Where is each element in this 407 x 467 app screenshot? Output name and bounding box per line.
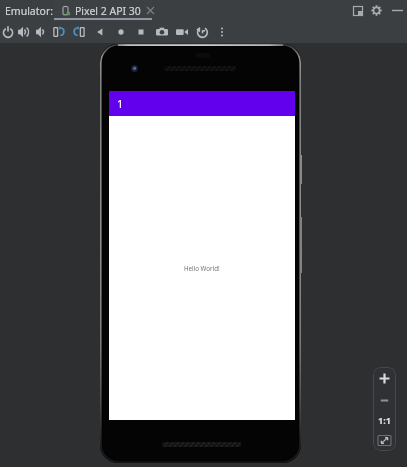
button[interactable]: Take screenshot	[153, 21, 171, 43]
button[interactable]: Rotate right	[70, 21, 88, 43]
button[interactable]: Zoom out	[373, 390, 396, 410]
staticText: Emulator:	[5, 4, 54, 18]
button[interactable]: Fit to screen	[373, 430, 396, 451]
staticText: Pixel 2 API 30	[75, 4, 141, 18]
other: Close tab	[147, 7, 154, 14]
button[interactable]: Home	[112, 21, 130, 43]
staticText: Hello World!	[184, 264, 220, 272]
button[interactable]: Minimize	[389, 0, 406, 21]
button[interactable]: More options	[213, 21, 231, 43]
button[interactable]: Pixel 2 API 30	[61, 0, 154, 21]
button[interactable]: Volume up	[15, 21, 33, 43]
staticText: 1	[117, 96, 124, 111]
button[interactable]: Snapshots	[193, 21, 211, 43]
button[interactable]: Zoom in	[373, 367, 396, 390]
button[interactable]: Rotate left	[50, 21, 68, 43]
button[interactable]: Record screen	[173, 21, 191, 43]
button[interactable]: Volume down	[33, 21, 51, 43]
button[interactable]: 1:1	[373, 410, 396, 430]
staticText: 1:1	[378, 414, 391, 426]
button[interactable]: Split window	[349, 0, 366, 21]
button[interactable]	[54, 0, 152, 21]
button[interactable]: Back	[91, 21, 109, 43]
button[interactable]: Settings	[368, 0, 385, 21]
button[interactable]: Overview	[132, 21, 150, 43]
button[interactable]: Power	[0, 21, 17, 43]
